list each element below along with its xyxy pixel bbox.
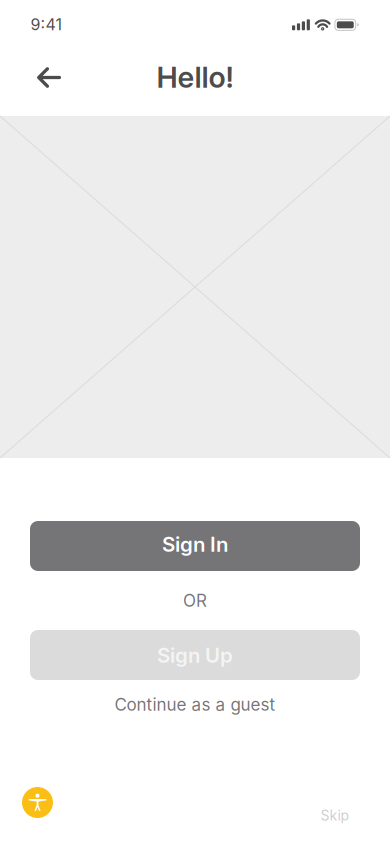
button[interactable]: Sign In (30, 521, 360, 571)
button[interactable]: Skip (305, 795, 365, 835)
staticText: Sign In (162, 532, 228, 557)
staticText: Hello! (156, 60, 233, 95)
button[interactable]: Continue as a guest (70, 682, 320, 726)
staticText: Sign Up (157, 643, 233, 668)
staticText: Skip (320, 807, 349, 824)
staticText: Continue as a guest (114, 694, 275, 715)
button[interactable]: Accessibility options (15, 780, 59, 824)
button[interactable]: Back (27, 55, 71, 99)
staticText: 9:41 (30, 15, 62, 34)
button[interactable]: Sign Up (30, 630, 360, 680)
staticText: OR (183, 590, 207, 611)
